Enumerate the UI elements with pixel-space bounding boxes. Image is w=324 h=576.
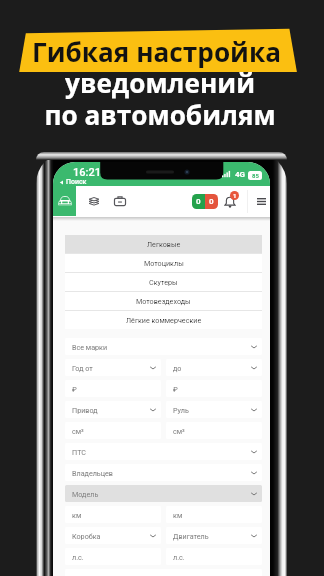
staticText: Модель xyxy=(72,490,99,498)
button[interactable]: л.с. xyxy=(65,548,161,565)
button[interactable]: см³ xyxy=(166,422,262,439)
staticText: ПТС xyxy=(72,448,86,456)
button[interactable]: Мотоциклы xyxy=(65,254,262,272)
staticText: ₽ xyxy=(173,385,178,393)
button[interactable]: 0 xyxy=(192,194,218,209)
button[interactable]: Лёгкие коммерческие xyxy=(65,311,262,329)
staticText: см³ xyxy=(173,427,185,435)
button[interactable]: Привод xyxy=(65,401,161,418)
staticText: до xyxy=(173,364,182,372)
button[interactable]: Двигатель xyxy=(166,527,262,544)
staticText: 4G xyxy=(235,170,246,179)
staticText: л.с. xyxy=(173,553,185,561)
staticText: Двигатель xyxy=(173,532,209,540)
staticText: Владельцев xyxy=(72,469,113,477)
button[interactable]: км xyxy=(166,506,262,523)
staticText: 85 xyxy=(252,172,259,179)
staticText: ₽ xyxy=(72,385,77,393)
button[interactable]: Каталог xyxy=(84,186,103,216)
staticText: км xyxy=(72,511,82,519)
button[interactable]: Год от xyxy=(65,359,161,376)
staticText: Гибкая настройка xyxy=(32,34,281,70)
staticText: Год от xyxy=(72,364,93,372)
staticText: Все марки xyxy=(72,343,108,351)
button[interactable]: Скутеры xyxy=(65,273,262,291)
button[interactable]: Модель xyxy=(65,485,262,502)
staticText: Руль xyxy=(173,406,189,414)
staticText: Мотовездеходы xyxy=(136,297,191,305)
staticText: уведомлений по автомобилям xyxy=(0,65,322,132)
button[interactable]: Услуги xyxy=(110,186,129,216)
staticText: Поиск xyxy=(66,178,87,186)
staticText: 0 xyxy=(209,197,214,206)
staticText: 0 xyxy=(196,197,201,206)
button[interactable]: ₽ xyxy=(65,380,161,397)
button[interactable]: ₽ xyxy=(166,380,262,397)
staticText: 1 xyxy=(233,192,237,199)
button[interactable]: км xyxy=(65,506,161,523)
button[interactable]: Руль xyxy=(166,401,262,418)
button[interactable]: Все марки xyxy=(65,338,262,355)
button[interactable]: ПТС xyxy=(65,443,262,460)
button[interactable]: Коробка xyxy=(65,527,161,544)
button[interactable]: Уведомления xyxy=(221,186,238,217)
button[interactable]: Автомобили xyxy=(53,186,76,216)
button[interactable]: Владельцев xyxy=(65,464,262,481)
staticText: Коробка xyxy=(72,532,101,540)
staticText: Скутеры xyxy=(149,278,178,286)
staticText: Лёгкие коммерческие xyxy=(126,316,202,324)
staticText: Легковые xyxy=(147,240,181,248)
button[interactable]: Меню xyxy=(253,186,270,217)
button[interactable]: Мотовездеходы xyxy=(65,292,262,310)
button[interactable]: л.с. xyxy=(166,548,262,565)
button[interactable]: см³ xyxy=(65,422,161,439)
staticText: л.с. xyxy=(72,553,84,561)
staticText: 16:21 xyxy=(73,166,101,179)
staticText: км xyxy=(173,511,183,519)
button[interactable]: Легковые xyxy=(65,235,262,253)
staticText: см³ xyxy=(72,427,84,435)
staticText: Мотоциклы xyxy=(144,259,184,267)
staticText: Привод xyxy=(72,406,98,414)
button[interactable]: до xyxy=(166,359,262,376)
